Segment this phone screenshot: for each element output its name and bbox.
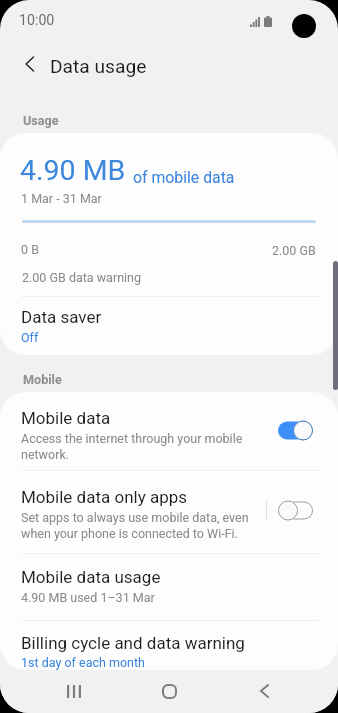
staticText: of mobile data (133, 168, 235, 187)
button[interactable]: Mobile data (278, 420, 313, 441)
staticText: 4.90 MB (20, 154, 126, 187)
button[interactable]: Mobile data only apps (0, 471, 338, 553)
staticText: Usage (23, 113, 59, 128)
button[interactable]: Mobile data usage (0, 554, 338, 620)
button[interactable]: Data saver (0, 297, 338, 355)
staticText: 1 Mar - 31 Mar (21, 191, 102, 206)
staticText: Billing cycle and data warning (21, 633, 245, 653)
button[interactable]: Home (141, 669, 197, 713)
staticText: 10:00 (19, 12, 55, 29)
staticText: 1st day of each month (21, 655, 145, 670)
staticText: Access the internet through your mobile … (21, 431, 243, 462)
staticText: Set apps to always use mobile data, even… (21, 510, 249, 541)
staticText: 2.00 GB data warning (22, 270, 142, 285)
button[interactable]: Billing cycle and data warning (0, 621, 338, 670)
staticText: Mobile data usage (21, 567, 161, 587)
staticText: Mobile data only apps (21, 487, 188, 507)
button[interactable]: Mobile data (0, 392, 338, 470)
staticText: 2.00 GB (272, 243, 316, 258)
staticText: Mobile data (21, 408, 111, 428)
staticText: Off (21, 330, 39, 345)
button[interactable]: Back (236, 669, 292, 713)
staticText: 0 B (21, 242, 39, 257)
staticText: Mobile (23, 372, 62, 387)
staticText: Data saver (21, 307, 102, 327)
staticText: Data usage (50, 55, 147, 78)
staticText: 4.90 MB used 1–31 Mar (21, 590, 155, 605)
button[interactable]: Navigate up (8, 42, 52, 86)
button[interactable]: Recent apps (46, 669, 102, 713)
button[interactable]: Mobile data only apps (278, 500, 313, 521)
